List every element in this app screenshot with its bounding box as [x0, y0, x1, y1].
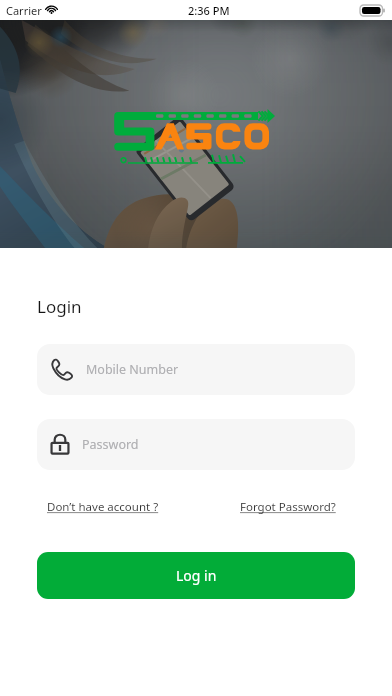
button[interactable]: Mobile number [37, 344, 355, 395]
staticText: 2:36 PM [188, 3, 230, 18]
button[interactable]: Forgot Password? [240, 499, 336, 515]
staticText: Log in [176, 566, 217, 585]
other: Password [47, 432, 73, 458]
staticText: Login [37, 295, 82, 318]
staticText: Mobile Number [86, 361, 179, 378]
button[interactable]: Don’t have account ? [47, 499, 159, 515]
staticText: Carrier [6, 3, 42, 18]
button[interactable]: Password [37, 419, 355, 470]
staticText: Password [82, 436, 139, 453]
button[interactable]: Log in [37, 552, 355, 599]
other: Mobile number [47, 355, 77, 385]
